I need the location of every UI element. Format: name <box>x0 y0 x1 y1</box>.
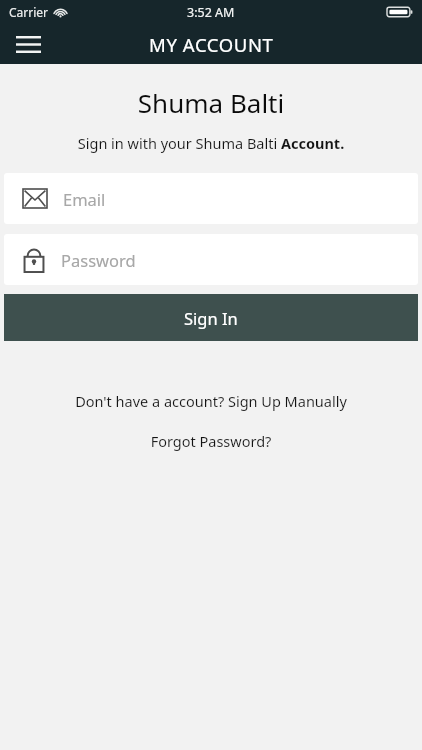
button[interactable]: Password <box>4 234 418 285</box>
button[interactable]: Email <box>4 173 418 224</box>
staticText: Sign In <box>184 307 238 329</box>
staticText: Carrier <box>9 4 49 20</box>
button[interactable]: Forgot Password? <box>0 429 422 453</box>
staticText: 3:52 AM <box>187 4 235 21</box>
button[interactable]: Sign In <box>4 294 418 341</box>
staticText: MY ACCOUNT <box>149 32 274 57</box>
staticText: Shuma Balti <box>0 85 422 120</box>
button[interactable]: Open navigation menu <box>8 24 48 64</box>
staticText: Email <box>63 188 106 210</box>
staticText: Sign in with your Shuma Balti Account. <box>0 133 422 153</box>
staticText: Password <box>61 249 136 271</box>
button[interactable]: Don't have a account? Sign Up Manually <box>0 389 422 413</box>
